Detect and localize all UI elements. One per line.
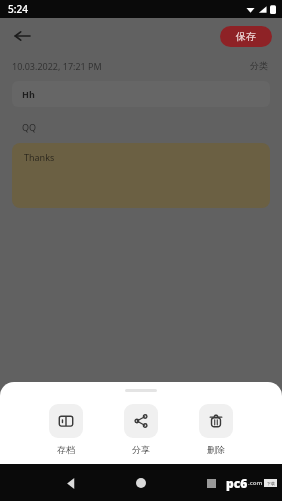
button[interactable]: 存档 [43,402,89,457]
button[interactable]: Back [56,468,86,498]
button[interactable]: Back [8,22,36,50]
button[interactable]: Home [126,468,156,498]
button[interactable]: 删除 [193,402,239,457]
staticText: Hh [22,88,35,100]
staticText: pc6 [226,475,248,491]
staticText: 03-10-2022 PM 5:23 [105,481,189,493]
button[interactable]: Hh [12,81,270,107]
staticText: 10.03.2022, 17:21 PM [12,60,102,72]
button[interactable]: 分类 [248,58,270,73]
staticText: 存档 [57,444,75,455]
staticText: 5:24 [8,2,28,16]
button[interactable]: 保存 [220,26,272,47]
staticText: Thanks [24,151,55,163]
staticText: 保存 [236,30,256,43]
staticText: .com [248,479,263,487]
button[interactable]: 分享 [118,402,164,457]
staticText: 分类 [250,60,268,71]
button[interactable]: Recents [196,468,226,498]
staticText: 下载 [267,481,275,486]
staticText: 分享 [132,444,150,455]
staticText: QQ [22,121,37,133]
staticText: 删除 [207,444,225,455]
